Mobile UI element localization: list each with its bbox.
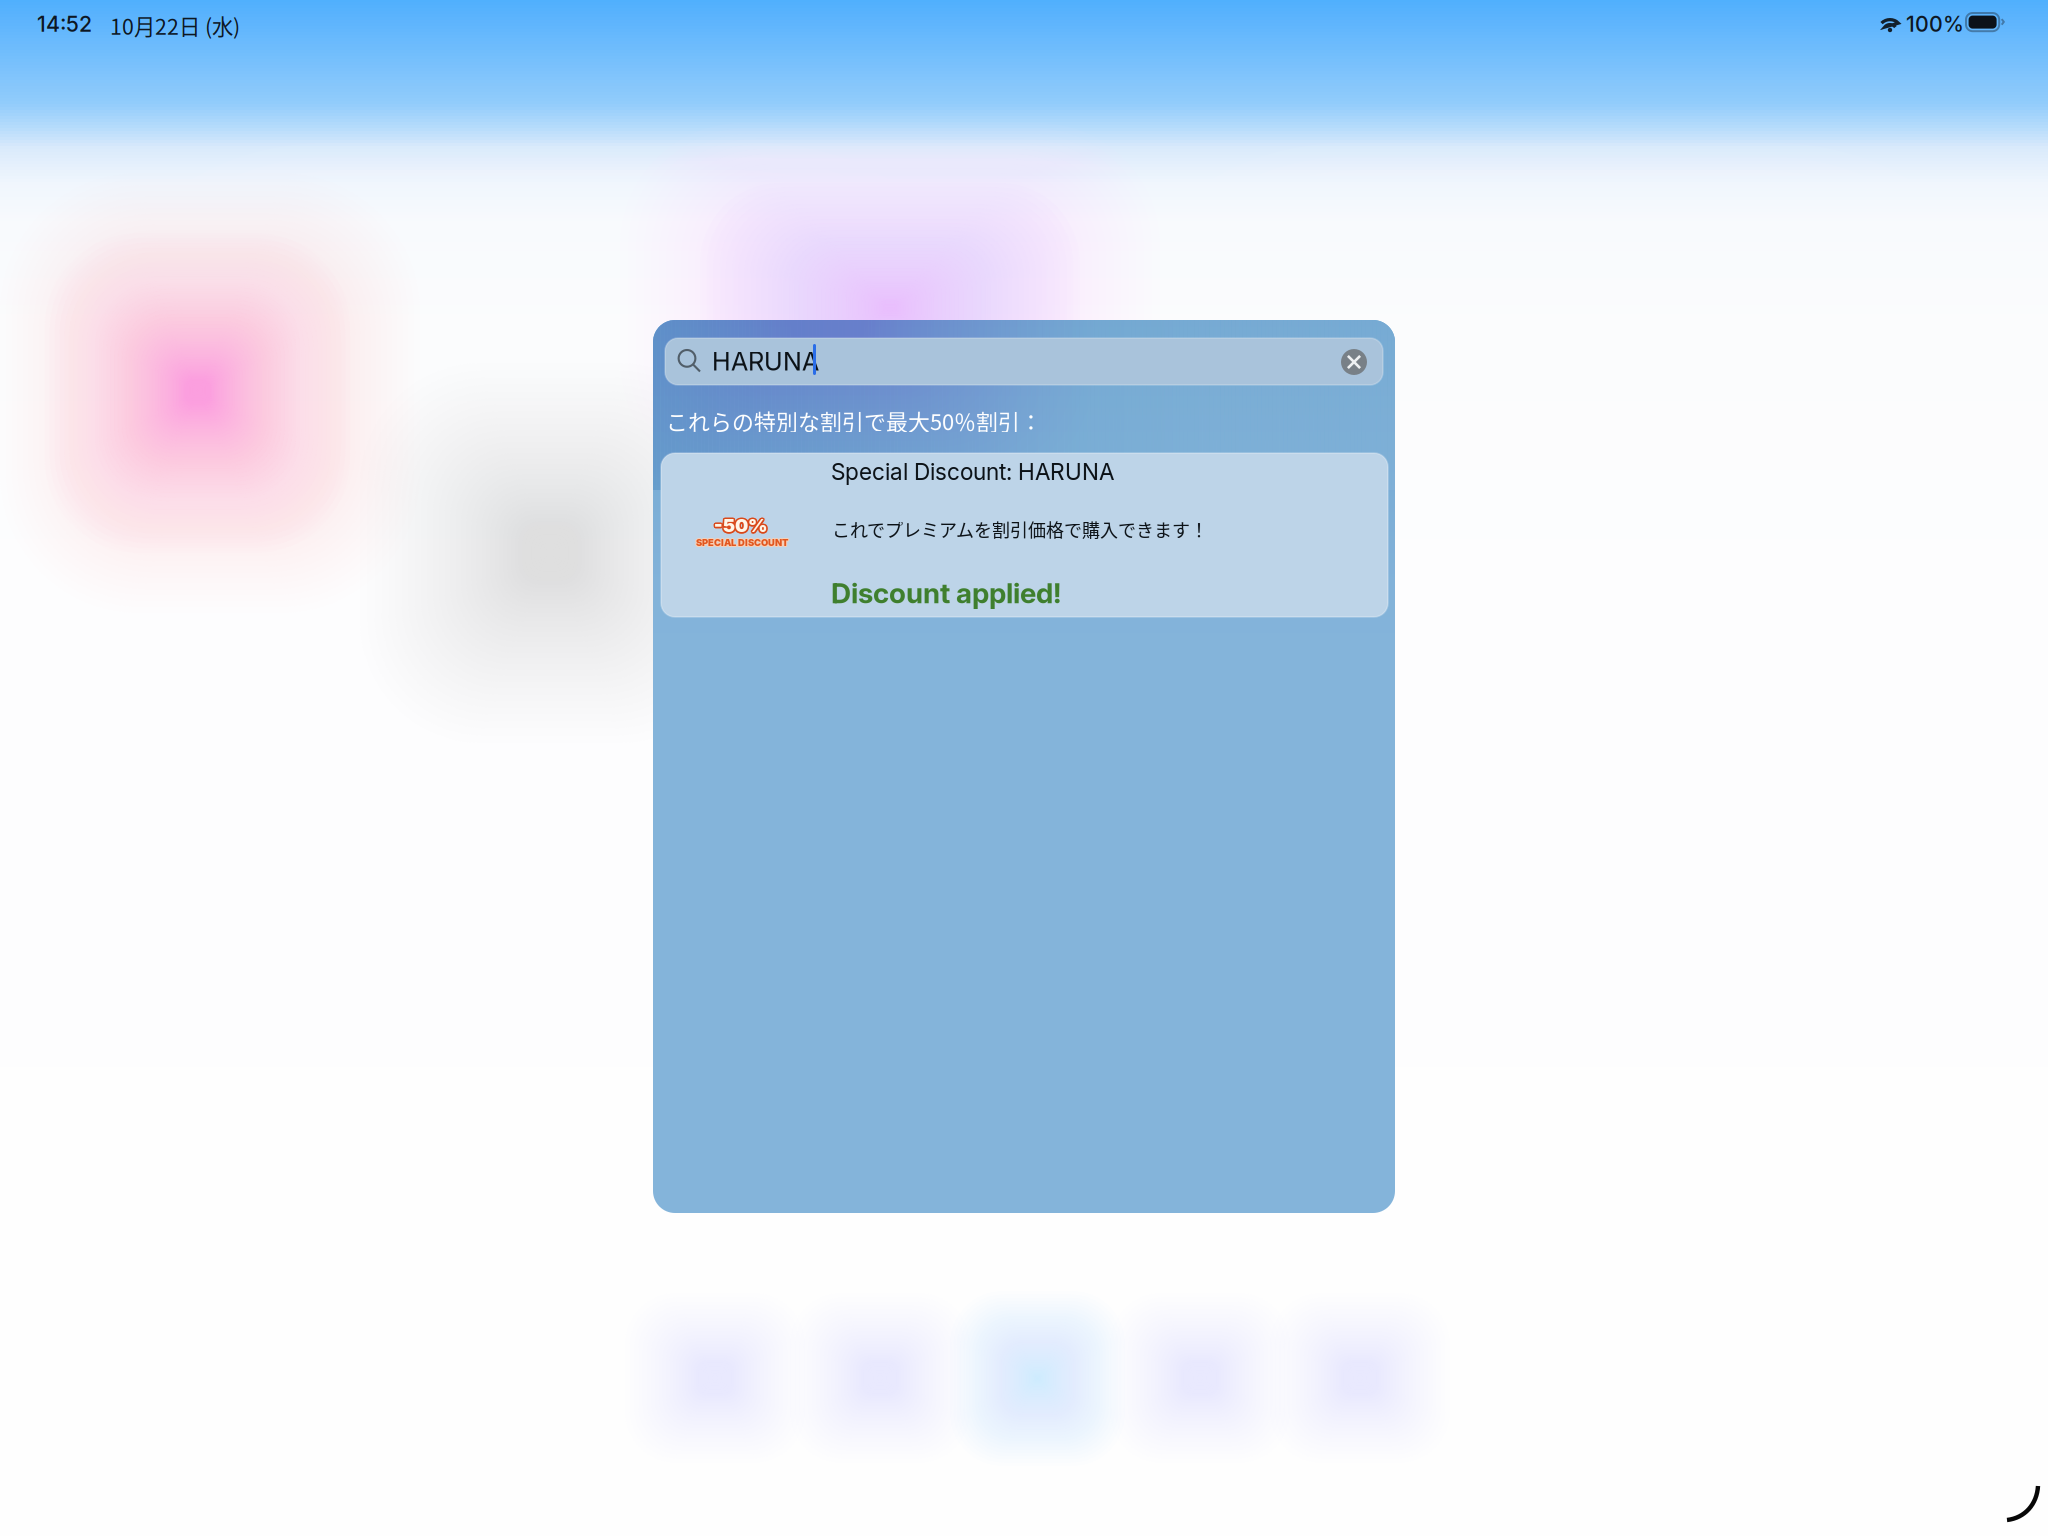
staticText: これでプレミアムを割引価格で購入できます！	[832, 516, 1208, 542]
staticText: -50%	[713, 515, 766, 538]
staticText: HARUNA	[712, 346, 819, 377]
staticText: SPECIAL DISCOUNT	[696, 538, 788, 549]
staticText: -50%	[715, 513, 768, 535]
staticText: SPECIAL DISCOUNT	[697, 538, 789, 549]
staticText: SPECIAL DISCOUNT	[695, 538, 787, 549]
staticText: SPECIAL DISCOUNT	[696, 536, 788, 547]
staticText: -50%	[712, 514, 765, 537]
staticText: -50%	[714, 514, 767, 537]
staticText: SPECIAL DISCOUNT	[697, 537, 789, 548]
staticText: Special Discount: HARUNA	[831, 458, 1114, 485]
staticText: -50%	[715, 515, 768, 538]
staticText: これらの特別な割引で最大50％割引：	[666, 405, 1042, 437]
button[interactable]: Special Discount: HARUNA	[661, 453, 1388, 617]
staticText: SPECIAL DISCOUNT	[697, 536, 789, 548]
staticText: 100%	[1906, 11, 1964, 37]
staticText: 14:52	[37, 11, 92, 37]
staticText: SPECIAL DISCOUNT	[695, 536, 787, 548]
staticText: 10月22日 (水)	[110, 10, 240, 41]
button[interactable]: HARUNA	[665, 338, 1383, 385]
button[interactable]: Clear search text	[1333, 341, 1375, 383]
staticText: -50%	[714, 516, 767, 538]
staticText: Discount applied!	[831, 576, 1061, 610]
staticText: -50%	[714, 512, 767, 535]
staticText: SPECIAL DISCOUNT	[696, 537, 788, 548]
staticText: SPECIAL DISCOUNT	[695, 537, 787, 548]
staticText: -50%	[716, 514, 769, 537]
staticText: -50%	[713, 513, 766, 535]
